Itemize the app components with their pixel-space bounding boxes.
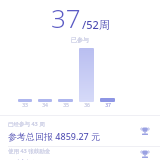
staticText: 已经参与 43 周 xyxy=(8,120,45,128)
other: Total return details xyxy=(138,124,152,138)
other: Cumulative discount details xyxy=(138,147,152,160)
staticText: 参考总回报 4859.27 元 xyxy=(8,130,101,142)
staticText: 35 xyxy=(63,102,69,109)
staticText: 使用 43 张鼓励金 xyxy=(8,147,51,155)
button[interactable]: 已经参与 43 周 xyxy=(0,116,160,146)
staticText: 34 xyxy=(42,102,48,109)
staticText: 37 xyxy=(105,102,111,109)
staticText: 36 xyxy=(84,102,90,109)
staticText: 33 xyxy=(22,102,28,109)
staticText: 累计抵现 117.82 元 xyxy=(8,157,86,160)
staticText: 37 xyxy=(51,0,81,35)
staticText: /52周 xyxy=(82,17,110,32)
button[interactable]: 使用 43 张鼓励金 xyxy=(0,147,160,160)
staticText: 已参与 xyxy=(71,36,89,44)
